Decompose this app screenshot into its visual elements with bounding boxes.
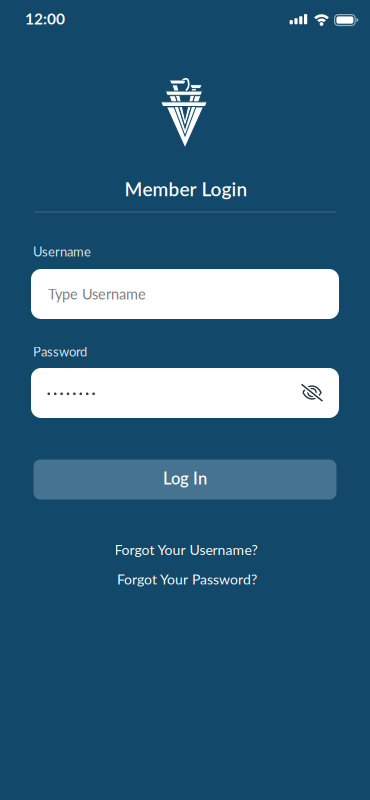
button[interactable]: Forgot Your Username? xyxy=(114,541,257,558)
staticText: 12:00 xyxy=(25,9,65,28)
button[interactable]: Password text field xyxy=(31,368,339,418)
button[interactable]: Log In xyxy=(33,459,336,499)
staticText: Type Username xyxy=(48,285,146,303)
staticText: Forgot Your Password? xyxy=(117,571,257,588)
staticText: Member Login xyxy=(124,178,247,200)
staticText: Log In xyxy=(163,468,207,488)
button[interactable]: Show password xyxy=(290,370,334,414)
button[interactable]: Username text field xyxy=(31,269,339,319)
staticText: Password xyxy=(33,344,87,359)
staticText: Forgot Your Username? xyxy=(114,541,257,558)
button[interactable]: Forgot Your Password? xyxy=(117,571,257,588)
staticText: Username xyxy=(33,244,91,259)
